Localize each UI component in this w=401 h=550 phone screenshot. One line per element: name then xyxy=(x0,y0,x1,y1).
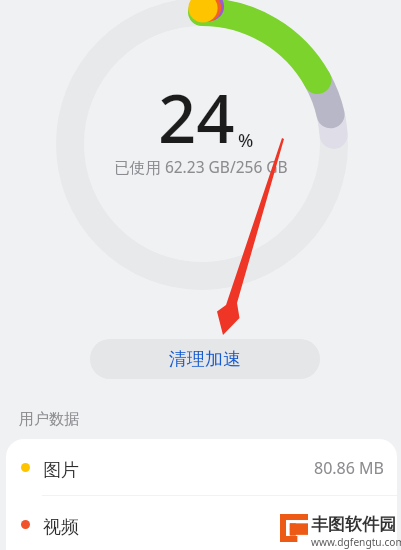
staticText: 用户数据 xyxy=(19,410,79,429)
staticText: 图片 xyxy=(43,459,79,482)
staticText: 丰图软件园 xyxy=(311,514,396,535)
button[interactable]: 视频 xyxy=(6,496,397,550)
staticText: 24 xyxy=(158,71,235,162)
staticText: www.dgfengtu.com xyxy=(311,535,401,549)
staticText: 已使用 62.23 GB/256 GB xyxy=(114,156,288,177)
staticText: 80.86 MB xyxy=(314,457,384,479)
button[interactable]: 图片 xyxy=(6,439,397,495)
button[interactable]: 清理加速 xyxy=(90,339,320,379)
staticText: % xyxy=(238,128,254,153)
staticText: 视频 xyxy=(43,516,79,539)
staticText: 清理加速 xyxy=(169,348,241,371)
